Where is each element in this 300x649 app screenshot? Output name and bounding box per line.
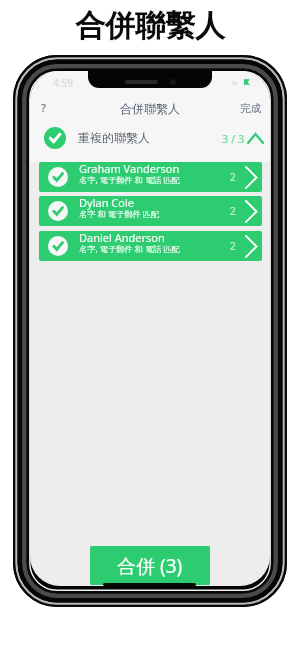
staticText: 名字 和 電子郵件 匹配 (79, 208, 160, 219)
staticText: 名字, 電子郵件 和 電話 匹配 (79, 243, 180, 254)
staticText: 3 / 3 (222, 131, 245, 146)
staticText: ? (41, 100, 46, 115)
button[interactable]: 重複的聯繫人 (30, 118, 270, 162)
staticText: 2 (230, 170, 236, 184)
staticText: Graham Vanderson (79, 162, 180, 176)
staticText: Dylan Cole (79, 196, 134, 210)
button[interactable]: Help (31, 95, 55, 119)
staticText: 合併聯繫人 (75, 7, 225, 45)
staticText: 4:59 (53, 76, 73, 90)
button[interactable]: 合併 (3) (90, 546, 210, 585)
staticText: 合併聯繫人 (120, 101, 180, 116)
staticText: 名字, 電子郵件 和 電話 匹配 (79, 174, 180, 185)
staticText: 合併 (3) (117, 553, 183, 579)
staticText: 2 (230, 204, 236, 218)
button[interactable]: Dylan Cole (39, 196, 262, 226)
button[interactable]: Daniel Anderson (39, 231, 262, 261)
button[interactable]: Graham Vanderson (39, 162, 262, 192)
staticText: 完成 (240, 102, 261, 115)
staticText: Daniel Anderson (79, 231, 165, 245)
button[interactable]: 完成 (233, 92, 267, 118)
staticText: 重複的聯繫人 (78, 130, 150, 145)
staticText: 2 (230, 239, 236, 253)
